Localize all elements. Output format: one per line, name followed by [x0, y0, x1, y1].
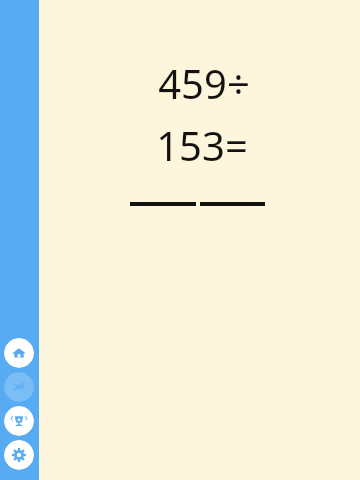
staticText: 153= — [156, 118, 248, 172]
button[interactable]: Settings — [4, 440, 34, 470]
staticText: 459÷ — [158, 56, 250, 110]
button[interactable]: Sound off — [4, 372, 34, 402]
button[interactable]: Home — [4, 338, 34, 368]
button[interactable]: Achievements — [4, 406, 34, 436]
